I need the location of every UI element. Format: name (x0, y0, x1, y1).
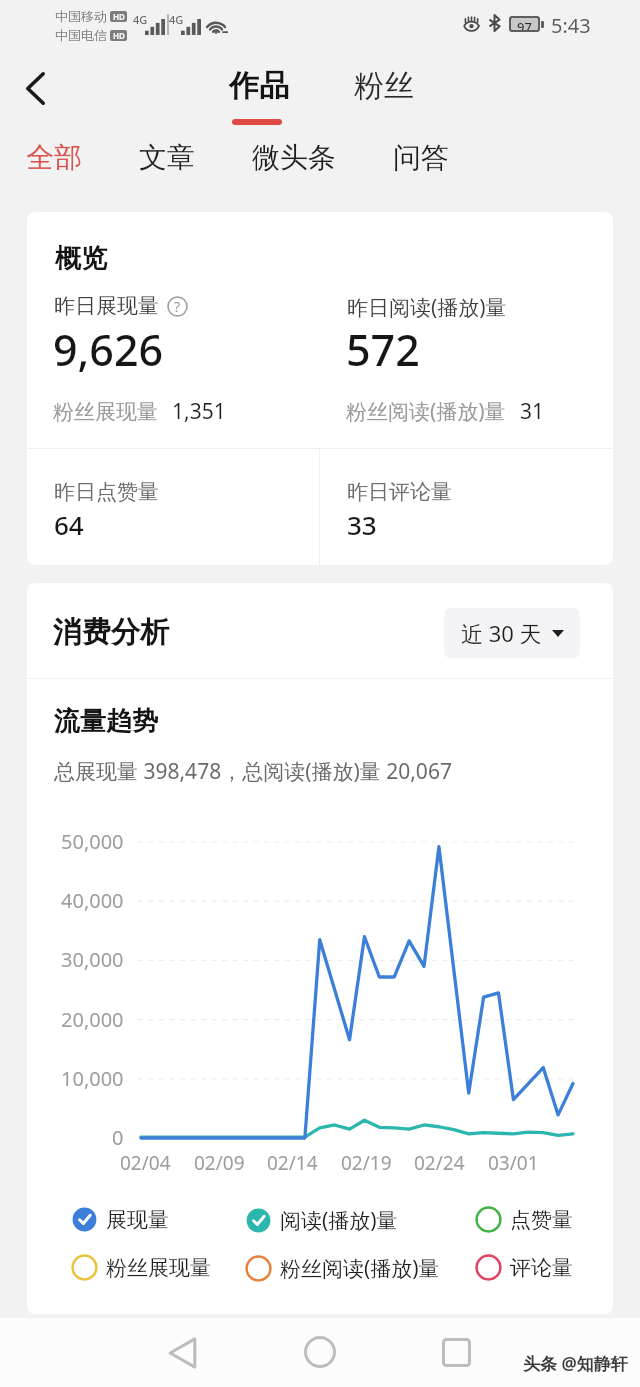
staticText: 4G (133, 12, 148, 27)
button[interactable]: 点赞量 (475, 1203, 573, 1236)
staticText: 消费分析 (53, 614, 169, 651)
staticText: 中国移动 (55, 8, 107, 24)
staticText: 9,626 (53, 320, 164, 379)
staticText: 1,351 (172, 397, 226, 426)
button[interactable]: 粉丝 (340, 67, 428, 105)
staticText: HD (113, 30, 125, 41)
button[interactable]: 粉丝展现量 (71, 1251, 211, 1284)
staticText: 粉丝阅读(播放)量 (280, 1254, 440, 1283)
staticText: HD (113, 11, 125, 22)
staticText: 展现量 (106, 1207, 169, 1233)
staticText: 粉丝展现量 (106, 1255, 211, 1281)
staticText: 粉丝展现量 (53, 399, 158, 425)
staticText: 40,000 (61, 887, 124, 914)
button[interactable]: 文章 (131, 134, 203, 181)
staticText: 33 (347, 507, 377, 542)
button[interactable]: 全部 (18, 134, 90, 181)
button[interactable]: 作品 (215, 67, 303, 125)
staticText: 总展现量 398,478，总阅读(播放)量 20,067 (54, 757, 452, 786)
staticText: 97 (517, 18, 532, 30)
staticText: 昨日展现量 (54, 293, 159, 319)
staticText: 20,000 (61, 1006, 124, 1033)
button[interactable]: Recents (431, 1327, 481, 1377)
staticText: 30,000 (61, 946, 124, 973)
staticText: 作品 (229, 67, 289, 105)
staticText: 近 30 天 (461, 618, 542, 648)
staticText: 02/19 (341, 1150, 392, 1176)
button[interactable]: 问答 (385, 134, 457, 181)
staticText: 阅读(播放)量 (280, 1206, 398, 1235)
staticText: 头条 @知静轩 (523, 1352, 628, 1375)
staticText: 评论量 (510, 1255, 573, 1281)
staticText: 4G (169, 12, 184, 27)
staticText: 全部 (26, 140, 82, 175)
button[interactable]: Back (159, 1328, 209, 1378)
staticText: 02/14 (267, 1150, 318, 1176)
staticText: 昨日评论量 (347, 479, 452, 505)
staticText: 流量趋势 (54, 705, 158, 738)
staticText: 02/04 (120, 1150, 171, 1176)
button[interactable]: 粉丝阅读(播放)量 (245, 1251, 440, 1286)
staticText: 02/09 (194, 1150, 245, 1176)
button[interactable]: 近 30 天 (444, 608, 580, 658)
staticText: 问答 (393, 140, 449, 175)
staticText: 02/24 (414, 1150, 465, 1176)
staticText: 50,000 (61, 828, 124, 855)
staticText: 10,000 (61, 1065, 124, 1092)
staticText: 点赞量 (510, 1207, 573, 1233)
staticText: 昨日点赞量 (54, 479, 159, 505)
staticText: 粉丝 (354, 67, 414, 105)
staticText: 572 (346, 320, 420, 379)
staticText: 概览 (55, 242, 107, 275)
staticText: 微头条 (252, 140, 336, 175)
button[interactable]: Home (295, 1327, 345, 1377)
button[interactable]: Back (7, 60, 64, 117)
button[interactable]: 展现量 (71, 1203, 169, 1236)
staticText: 5:43 (551, 12, 591, 39)
staticText: 中国电信 (55, 27, 107, 43)
button[interactable]: 阅读(播放)量 (245, 1203, 398, 1238)
staticText: 64 (54, 507, 84, 542)
staticText: 31 (520, 397, 545, 426)
staticText: 0 (112, 1124, 124, 1151)
staticText: 粉丝阅读(播放)量 (346, 397, 506, 426)
button[interactable]: 微头条 (244, 134, 344, 181)
staticText: 文章 (139, 140, 195, 175)
staticText: ? (174, 297, 181, 316)
staticText: 03/01 (488, 1150, 539, 1176)
button[interactable]: 评论量 (475, 1251, 573, 1284)
staticText: 昨日阅读(播放)量 (347, 293, 507, 322)
